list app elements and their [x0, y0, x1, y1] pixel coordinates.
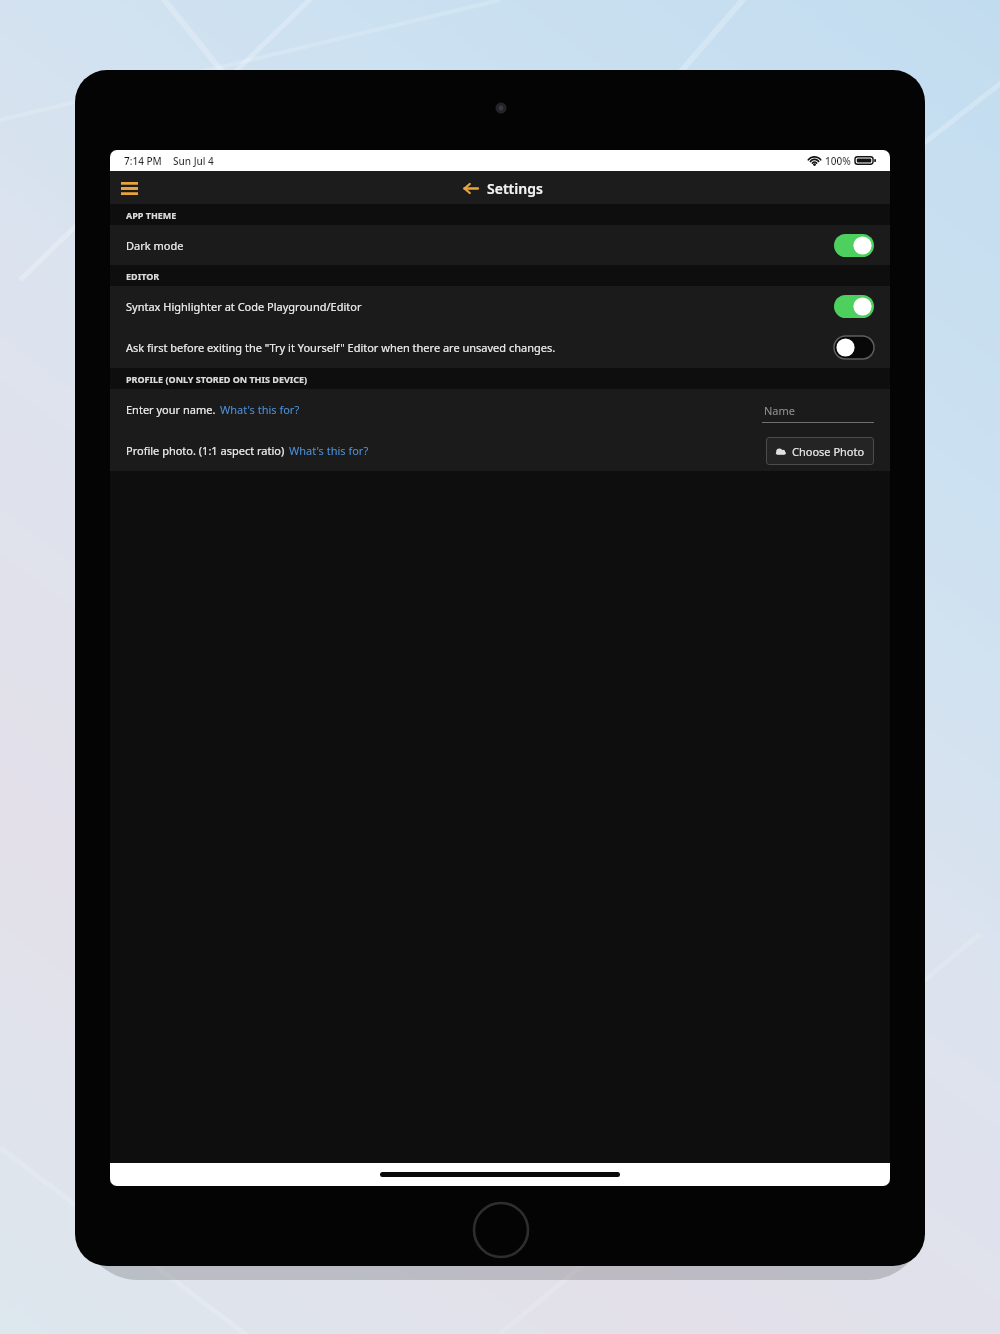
button[interactable]: Dark mode	[110, 225, 890, 265]
staticText: 7:14 PM	[124, 154, 162, 168]
staticText: What's this for?	[220, 402, 300, 417]
button[interactable]: What's this for?	[220, 402, 300, 417]
staticText: 100%	[825, 154, 851, 168]
staticText: Dark mode	[126, 238, 824, 253]
staticText: Enter your name.	[126, 402, 216, 417]
staticText: PROFILE (ONLY STORED ON THIS DEVICE)	[126, 373, 308, 385]
staticText: Profile photo. (1:1 aspect ratio)	[126, 443, 285, 458]
staticText: What's this for?	[289, 443, 369, 458]
staticText: Ask first before exiting the "Try it You…	[126, 340, 824, 355]
button[interactable]: Choose Photo	[766, 437, 874, 465]
button[interactable]: Ask first before exiting the "Try it You…	[110, 327, 890, 368]
staticText: Settings	[487, 179, 543, 198]
staticText: Name	[764, 403, 796, 418]
button[interactable]: Back	[457, 175, 483, 201]
staticText: Choose Photo	[792, 444, 865, 459]
button[interactable]: Open navigation menu	[114, 173, 144, 203]
button[interactable]: Syntax Highlighter at Code Playground/Ed…	[110, 286, 890, 327]
button[interactable]: What's this for?	[289, 443, 369, 458]
staticText: EDITOR	[126, 270, 160, 282]
staticText: APP THEME	[126, 209, 177, 221]
staticText: Syntax Highlighter at Code Playground/Ed…	[126, 299, 824, 314]
button[interactable]: Name	[762, 397, 874, 423]
staticText: Sun Jul 4	[173, 154, 214, 168]
